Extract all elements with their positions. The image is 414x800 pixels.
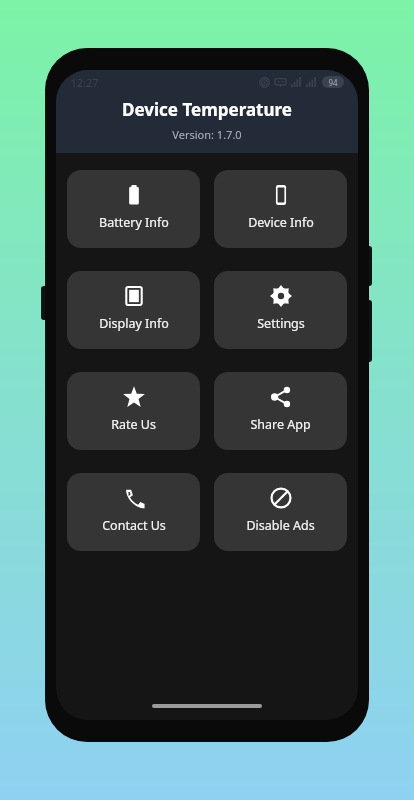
staticText: Device Info [248,214,314,231]
button[interactable]: Share App [214,372,347,450]
staticText: 12:27 [70,75,99,90]
staticText: Version: 1.7.0 [172,127,242,142]
button[interactable]: Device Info [214,170,347,248]
staticText: Disable Ads [246,517,315,534]
button[interactable]: Display Info [67,271,200,349]
button[interactable]: Disable Ads [214,473,347,551]
staticText: Contact Us [102,517,166,534]
button[interactable]: Rate Us [67,372,200,450]
staticText: Rate Us [111,416,156,433]
staticText: Device Temperature [122,98,292,121]
staticText: Battery Info [99,214,169,231]
staticText: Settings [257,315,305,332]
staticText: Display Info [99,315,169,332]
button[interactable]: Battery Info [67,170,200,248]
staticText: Share App [250,416,311,433]
button[interactable]: Settings [214,271,347,349]
staticText: 94 [328,77,338,88]
button[interactable]: Contact Us [67,473,200,551]
